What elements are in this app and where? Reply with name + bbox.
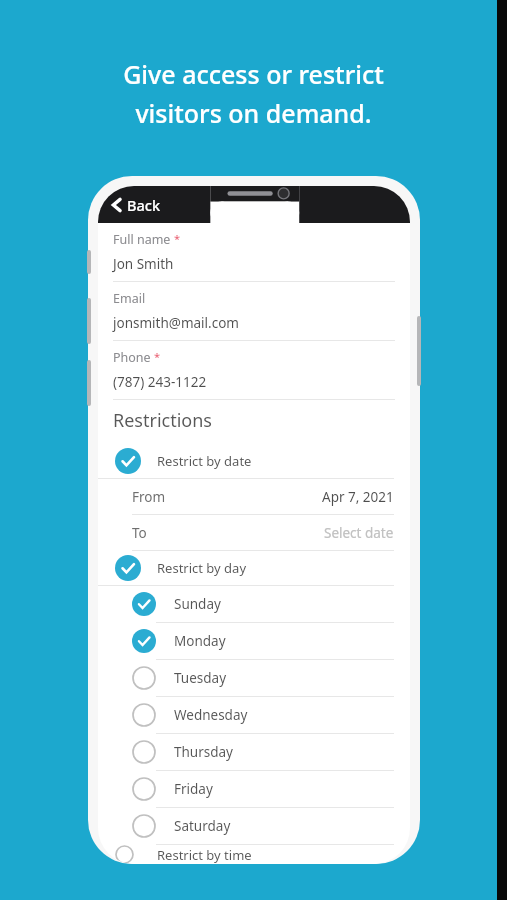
button[interactable]: Selected [98, 586, 410, 623]
button[interactable]: Selected [98, 551, 410, 586]
staticText: jonsmith@mail.com [113, 314, 239, 332]
staticText: Thursday [174, 743, 233, 761]
other: Selected [132, 592, 156, 616]
staticText: * [174, 231, 181, 246]
other: Not selected [132, 777, 156, 801]
staticText: Full name [113, 231, 171, 248]
button[interactable]: To [98, 515, 410, 551]
button[interactable]: Not selected [98, 734, 410, 771]
button[interactable]: Selected [98, 623, 410, 660]
other: Not selected [115, 845, 141, 864]
staticText: Back [127, 195, 161, 215]
other: Selected [115, 448, 141, 474]
other: Not selected [132, 666, 156, 690]
staticText: Jon Smith [113, 255, 174, 273]
button[interactable]: Full name [98, 223, 410, 282]
staticText: Give access or restrict [123, 57, 384, 91]
other: Not selected [132, 814, 156, 838]
staticText: Apr 7, 2021 [322, 488, 394, 506]
staticText: Restrict by time [157, 846, 252, 864]
staticText: Friday [174, 780, 213, 798]
staticText: Saturday [174, 817, 231, 835]
button[interactable]: Email [98, 282, 410, 341]
button[interactable]: Not selected [98, 808, 410, 845]
staticText: Restrictions [113, 408, 212, 433]
staticText: Tuesday [174, 669, 227, 687]
button[interactable]: Not selected [98, 697, 410, 734]
staticText: Restrict by day [157, 559, 247, 577]
staticText: From [132, 488, 166, 506]
staticText: To [132, 524, 147, 542]
other: Back [110, 198, 124, 212]
button[interactable]: From [98, 479, 410, 515]
button[interactable]: Phone [98, 341, 410, 400]
other: Not selected [132, 703, 156, 727]
staticText: (787) 243-1122 [113, 373, 207, 391]
staticText: Phone [113, 349, 151, 366]
other: Not selected [132, 740, 156, 764]
button[interactable]: Back [104, 190, 167, 220]
other: Selected [132, 629, 156, 653]
staticText: Email [113, 290, 146, 307]
staticText: * [154, 349, 161, 364]
button[interactable]: Selected [98, 444, 410, 479]
staticText: Restrict by date [157, 452, 252, 470]
staticText: Select date [324, 524, 394, 542]
button[interactable]: Not selected [98, 771, 410, 808]
staticText: Sunday [174, 595, 221, 613]
button[interactable]: Not selected [98, 660, 410, 697]
other: Selected [115, 555, 141, 581]
staticText: Monday [174, 632, 226, 650]
button[interactable]: Not selected [98, 845, 410, 864]
staticText: visitors on demand. [135, 96, 372, 130]
staticText: Wednesday [174, 706, 248, 724]
